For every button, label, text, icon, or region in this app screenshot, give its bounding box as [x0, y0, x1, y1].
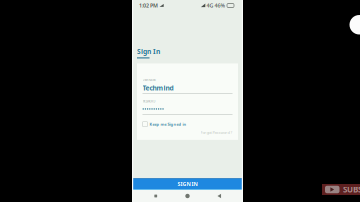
staticText: 1:02 PM — [139, 2, 158, 9]
staticText: Sign In — [137, 47, 160, 56]
staticText: SUBSCRIBE — [343, 184, 360, 195]
button[interactable]: Forgot Password ? — [200, 130, 232, 135]
staticText: SIGN IN — [177, 180, 197, 188]
button[interactable]: Recents — [148, 190, 164, 202]
staticText: 4G 46% — [206, 2, 225, 9]
staticText: Techmind — [142, 83, 173, 92]
staticText: Forgot Password ? — [200, 130, 232, 135]
button[interactable]: Back — [211, 190, 227, 202]
staticText: USERNAME — [142, 78, 155, 82]
staticText: PASSWORD — [142, 100, 155, 103]
staticText: Keep me Signed in — [149, 121, 186, 127]
button[interactable]: Home — [179, 190, 195, 202]
button[interactable]: SIGN IN — [132, 178, 243, 190]
button[interactable]: Keep me Signed in — [142, 121, 232, 127]
button[interactable]: Subscribe — [322, 184, 360, 195]
